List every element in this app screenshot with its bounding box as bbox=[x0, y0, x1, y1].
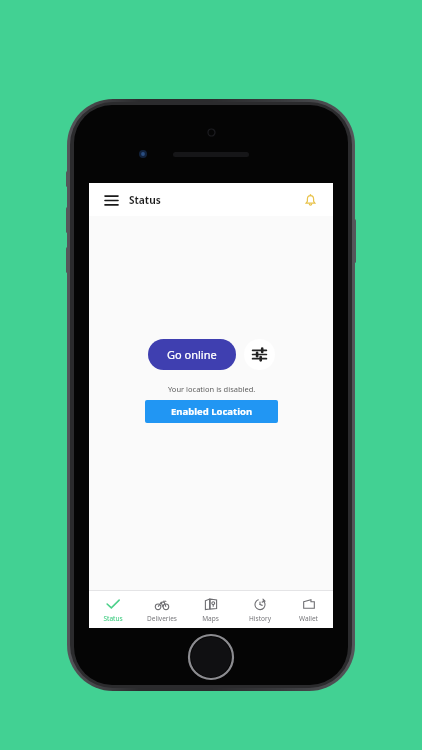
staticText: History bbox=[249, 614, 271, 623]
button[interactable]: Go online bbox=[148, 339, 236, 370]
button[interactable]: History bbox=[235, 591, 284, 628]
staticText: Status bbox=[103, 614, 123, 623]
staticText: Maps bbox=[202, 614, 219, 623]
button[interactable]: Deliveries bbox=[137, 591, 186, 628]
button[interactable]: Maps bbox=[186, 591, 235, 628]
staticText: Your location is disabled. bbox=[168, 384, 256, 394]
staticText: Deliveries bbox=[147, 614, 177, 623]
button[interactable]: Menu bbox=[101, 190, 121, 210]
button[interactable]: Enabled Location bbox=[145, 400, 278, 423]
button[interactable]: Status bbox=[89, 591, 137, 628]
staticText: Go online bbox=[167, 347, 217, 362]
staticText: Enabled Location bbox=[171, 405, 253, 418]
staticText: Wallet bbox=[299, 614, 318, 623]
staticText: Status bbox=[129, 193, 161, 207]
button[interactable]: Filters bbox=[244, 339, 275, 370]
button[interactable]: Notifications bbox=[299, 189, 321, 211]
button[interactable]: Wallet bbox=[284, 591, 333, 628]
